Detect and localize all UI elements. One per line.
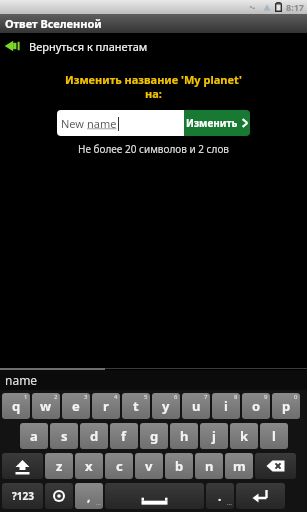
- button[interactable]: k: [230, 423, 258, 449]
- staticText: b: [175, 457, 184, 475]
- staticText: 0: [294, 393, 298, 401]
- staticText: 4: [114, 393, 118, 401]
- staticText: Изменить название 'My planet' на:: [58, 72, 249, 101]
- staticText: 5: [144, 393, 148, 401]
- staticText: Не более 20 символов и 2 слов: [0, 142, 307, 156]
- staticText: 1: [24, 393, 28, 401]
- button[interactable]: name: [5, 372, 38, 388]
- staticText: i: [224, 397, 228, 415]
- button[interactable]: h: [170, 423, 198, 449]
- staticText: Вернуться к планетам: [29, 39, 148, 54]
- staticText: 6: [174, 393, 178, 401]
- staticText: w: [40, 397, 52, 415]
- button[interactable]: Key: [45, 483, 73, 509]
- button[interactable]: u: [182, 393, 210, 419]
- staticText: a: [30, 427, 38, 445]
- staticText: 3: [84, 393, 88, 401]
- button[interactable]: c: [105, 453, 133, 479]
- staticText: New: [61, 116, 87, 131]
- button[interactable]: d: [80, 423, 108, 449]
- button[interactable]: s: [50, 423, 78, 449]
- staticText: p: [282, 397, 291, 415]
- staticText: r: [103, 397, 109, 415]
- button[interactable]: Back: [0, 33, 307, 59]
- staticText: c: [116, 457, 123, 475]
- button[interactable]: m: [225, 453, 253, 479]
- staticText: g: [150, 427, 159, 445]
- staticText: d: [90, 427, 99, 445]
- staticText: e: [72, 397, 80, 415]
- button[interactable]: n: [195, 453, 223, 479]
- button[interactable]: p: [272, 393, 300, 419]
- staticText: ,: [87, 488, 91, 504]
- staticText: z: [56, 457, 63, 475]
- button[interactable]: o: [242, 393, 270, 419]
- staticText: t: [133, 397, 139, 415]
- button[interactable]: y: [152, 393, 180, 419]
- button[interactable]: Key: [255, 453, 296, 479]
- staticText: Изменить: [186, 116, 238, 130]
- button[interactable]: t: [122, 393, 150, 419]
- button[interactable]: b: [165, 453, 193, 479]
- staticText: ···: [96, 500, 101, 508]
- staticText: y: [162, 397, 170, 415]
- button[interactable]: w: [32, 393, 60, 419]
- staticText: u: [192, 397, 201, 415]
- staticText: 7: [204, 393, 208, 401]
- button[interactable]: .: [206, 483, 234, 509]
- staticText: 8:17: [286, 1, 304, 13]
- staticText: 9: [264, 393, 268, 401]
- staticText: 2: [54, 393, 58, 401]
- staticText: j: [212, 427, 216, 445]
- button[interactable]: f: [110, 423, 138, 449]
- staticText: x: [85, 457, 93, 475]
- staticText: s: [61, 427, 68, 445]
- staticText: k: [240, 427, 249, 445]
- staticText: h: [180, 427, 189, 445]
- button[interactable]: Key: [2, 453, 43, 479]
- staticText: name: [87, 116, 117, 131]
- staticText: ?123: [12, 489, 34, 503]
- staticText: m: [233, 457, 246, 475]
- button[interactable]: e: [62, 393, 90, 419]
- button[interactable]: Изменить: [184, 110, 250, 136]
- staticText: ···: [227, 500, 232, 508]
- button[interactable]: i: [212, 393, 240, 419]
- button[interactable]: r: [92, 393, 120, 419]
- staticText: 8: [234, 393, 238, 401]
- button[interactable]: j: [200, 423, 228, 449]
- staticText: f: [121, 427, 127, 445]
- staticText: n: [205, 457, 214, 475]
- button[interactable]: ?123: [2, 483, 43, 509]
- button[interactable]: v: [135, 453, 163, 479]
- button[interactable]: q: [2, 393, 30, 419]
- other: Back: [4, 39, 24, 53]
- button[interactable]: a: [20, 423, 48, 449]
- button[interactable]: g: [140, 423, 168, 449]
- button[interactable]: x: [75, 453, 103, 479]
- staticText: l: [272, 427, 276, 445]
- button[interactable]: Key: [236, 483, 285, 509]
- button[interactable]: ,: [75, 483, 103, 509]
- staticText: v: [145, 457, 153, 475]
- staticText: Ответ Вселенной: [5, 16, 102, 31]
- button[interactable]: z: [45, 453, 73, 479]
- staticText: .: [218, 488, 222, 504]
- staticText: q: [12, 397, 21, 415]
- staticText: o: [252, 397, 261, 415]
- button[interactable]: l: [260, 423, 288, 449]
- button[interactable]: Key: [105, 483, 204, 509]
- button[interactable]: New: [57, 110, 184, 136]
